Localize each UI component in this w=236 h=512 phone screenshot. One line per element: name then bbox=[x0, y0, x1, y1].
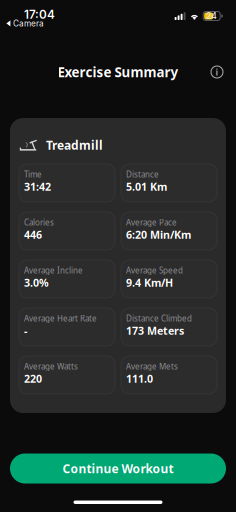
staticText: 173 Meters bbox=[126, 324, 184, 338]
staticText: Calories bbox=[24, 217, 54, 228]
staticText: 31:42 bbox=[24, 180, 51, 194]
staticText: 3.0% bbox=[24, 276, 49, 290]
staticText: 5.01 Km bbox=[126, 180, 167, 194]
staticText: Average Mets bbox=[126, 361, 178, 372]
staticText: Exercise Summary bbox=[57, 63, 178, 81]
staticText: - bbox=[24, 324, 27, 338]
staticText: Distance bbox=[126, 169, 159, 180]
button[interactable]: Continue Workout bbox=[10, 453, 226, 483]
staticText: 9.4 Km/H bbox=[126, 276, 173, 290]
staticText: Camera bbox=[13, 18, 44, 28]
staticText: Treadmill bbox=[46, 137, 103, 153]
staticText: Average Pace bbox=[126, 217, 177, 228]
staticText: 446 bbox=[24, 228, 42, 242]
staticText: Time bbox=[24, 169, 42, 180]
staticText: 111.0 bbox=[126, 372, 153, 386]
staticText: Continue Workout bbox=[62, 460, 173, 476]
staticText: Average Speed bbox=[126, 265, 183, 276]
staticText: Average Heart Rate bbox=[24, 313, 97, 324]
staticText: Average Watts bbox=[24, 361, 78, 372]
staticText: Distance Climbed bbox=[126, 313, 192, 324]
staticText: 17:04 bbox=[24, 7, 55, 22]
staticText: i bbox=[215, 66, 218, 78]
button[interactable]: Information bbox=[209, 64, 225, 80]
staticText: Average Incline bbox=[24, 265, 83, 276]
staticText: 6:20 Min/Km bbox=[126, 228, 191, 242]
staticText: 24 bbox=[206, 11, 217, 21]
staticText: 220 bbox=[24, 372, 42, 386]
